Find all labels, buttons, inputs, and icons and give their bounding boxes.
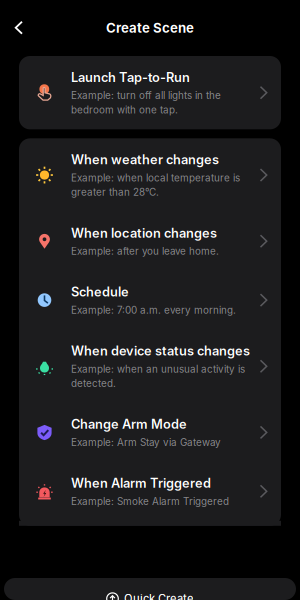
button[interactable]: Schedule — [19, 271, 281, 330]
staticText: When device status changes — [71, 343, 250, 359]
staticText: Example: when an unusual activity is det… — [71, 363, 245, 389]
staticText: Example: turn off all lights in the bedr… — [71, 89, 221, 116]
staticText: Example: 7:00 a.m. every morning. — [71, 304, 236, 316]
staticText: Example: Smoke Alarm Triggered — [71, 495, 229, 507]
button[interactable]: When Alarm Triggered — [19, 462, 281, 521]
button[interactable]: When device status changes — [19, 330, 281, 403]
staticText: When location changes — [71, 225, 217, 241]
staticText: When Alarm Triggered — [71, 475, 211, 491]
staticText: When weather changes — [71, 152, 219, 167]
staticText: Example: Arm Stay via Gateway — [71, 436, 221, 448]
staticText: Change Arm Mode — [71, 416, 187, 432]
staticText: Quick Create — [124, 592, 194, 600]
button[interactable]: Launch Tap-to-Run — [19, 56, 281, 129]
button[interactable]: Back — [4, 14, 34, 42]
button[interactable]: When location changes — [19, 212, 281, 271]
button[interactable]: When weather changes — [19, 138, 281, 212]
staticText: Create Scene — [106, 20, 194, 36]
staticText: Example: when local temperature is great… — [71, 172, 240, 198]
staticText: Launch Tap-to-Run — [71, 69, 190, 85]
button[interactable]: Quick Create — [4, 578, 296, 600]
staticText: Example: after you leave home. — [71, 245, 219, 257]
button[interactable]: Change Arm Mode — [19, 403, 281, 462]
staticText: Schedule — [71, 284, 129, 300]
